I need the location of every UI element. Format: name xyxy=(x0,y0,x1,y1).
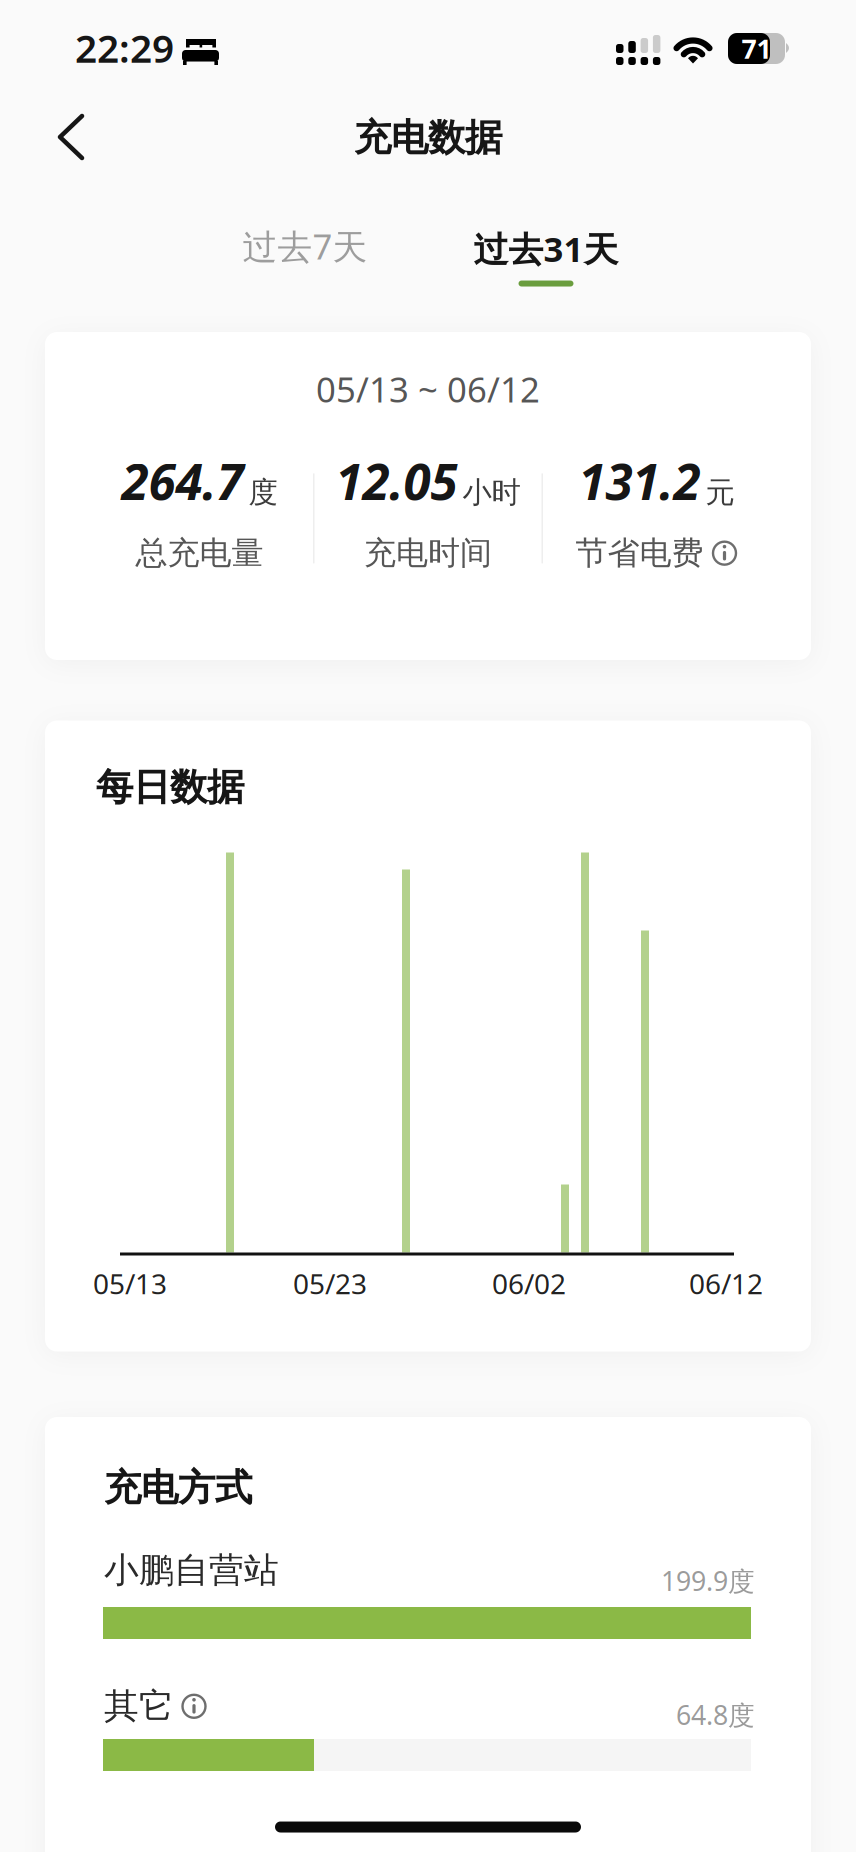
staticText: 节省电费 xyxy=(575,533,703,573)
staticText: 131.2 xyxy=(578,448,700,513)
staticText: 71 xyxy=(741,31,771,66)
button[interactable]: About other charging xyxy=(181,1693,207,1719)
staticText: 06/12 xyxy=(689,1265,763,1302)
staticText: 过去7天 xyxy=(242,223,367,269)
staticText: 264.7 xyxy=(121,448,243,513)
staticText: 度 xyxy=(248,474,277,510)
staticText: 每日数据 xyxy=(96,764,244,810)
staticText: 充电数据 xyxy=(354,115,502,161)
button[interactable]: 过去7天 xyxy=(205,218,405,274)
staticText: 元 xyxy=(705,474,734,510)
staticText: 22:29 xyxy=(75,22,174,73)
staticText: 06/02 xyxy=(492,1265,566,1302)
staticText: 05/23 xyxy=(293,1265,367,1302)
staticText: 12.05 xyxy=(335,448,457,513)
staticText: 05/13 ~ 06/12 xyxy=(316,366,540,412)
button[interactable]: About saved cost xyxy=(711,540,737,566)
staticText: 小时 xyxy=(462,474,520,510)
staticText: 05/13 xyxy=(93,1265,167,1302)
staticText: 过去31天 xyxy=(473,225,618,271)
staticText: 充电方式 xyxy=(104,1465,252,1511)
staticText: 总充电量 xyxy=(135,533,263,573)
staticText: 其它 xyxy=(104,1685,174,1728)
staticText: 小鹏自营站 xyxy=(104,1549,279,1592)
staticText: 199.9度 xyxy=(661,1563,755,1598)
button[interactable]: Back xyxy=(44,100,98,174)
button[interactable]: 过去31天 xyxy=(436,216,656,296)
staticText: 64.8度 xyxy=(676,1697,755,1732)
staticText: 充电时间 xyxy=(364,533,492,573)
